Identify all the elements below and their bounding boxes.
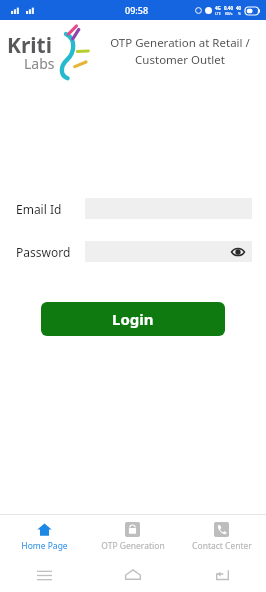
staticText: % [238, 11, 241, 16]
staticText: Contact Center [192, 540, 252, 552]
button[interactable]: Recents [0, 558, 88, 592]
staticText: Home Page [21, 540, 68, 552]
button[interactable]: Show password [85, 241, 252, 262]
staticText: 40 [236, 5, 242, 11]
staticText: 0.40 [224, 5, 233, 11]
staticText: Email Id [16, 201, 85, 217]
staticText: Labs [24, 54, 55, 73]
button[interactable]: Login [41, 302, 225, 336]
button[interactable]: Home [88, 558, 177, 592]
button[interactable]: Show password [230, 244, 246, 260]
staticText: OTP Generation at Retail / Customer Outl… [96, 35, 264, 67]
staticText: Login [112, 309, 154, 329]
button[interactable]: Back [177, 558, 266, 592]
staticText: Password [16, 244, 85, 260]
staticText: 4G [215, 5, 221, 11]
staticText: LTE [215, 11, 221, 16]
staticText: OTP Generation [101, 540, 165, 552]
staticText: 09:58 [125, 4, 149, 16]
button[interactable]: Home Page [0, 517, 88, 556]
staticText: KB/s [225, 11, 233, 16]
staticText: Kriti [7, 31, 53, 60]
button[interactable]: OTP Generation [88, 517, 177, 556]
button[interactable]: Contact Center [177, 517, 266, 556]
